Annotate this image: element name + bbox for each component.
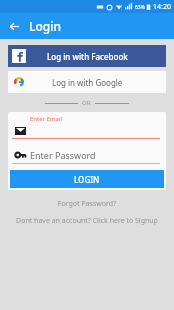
button[interactable]: Back xyxy=(5,17,23,35)
staticText: 63% xyxy=(135,4,145,11)
button[interactable]: LOGIN xyxy=(10,170,164,188)
staticText: 14:20 xyxy=(153,2,171,12)
staticText: OR xyxy=(82,99,91,107)
button[interactable]: Log in with Facebook xyxy=(8,45,166,67)
staticText: Enter Email xyxy=(30,115,63,123)
button[interactable]: Log in with Google xyxy=(8,71,166,93)
staticText: Log in with Google xyxy=(52,77,123,88)
button[interactable]: Forgot Password? xyxy=(0,198,174,210)
staticText: LOGIN xyxy=(74,174,100,185)
staticText: Enter Password xyxy=(30,149,96,161)
staticText: Login xyxy=(29,18,61,34)
button[interactable]: Enter Email xyxy=(8,112,166,139)
button[interactable]: Dont have an account? Click here to Sign… xyxy=(0,215,174,227)
staticText: Log in with Facebook xyxy=(47,51,128,62)
button[interactable]: Enter Password xyxy=(8,147,166,164)
